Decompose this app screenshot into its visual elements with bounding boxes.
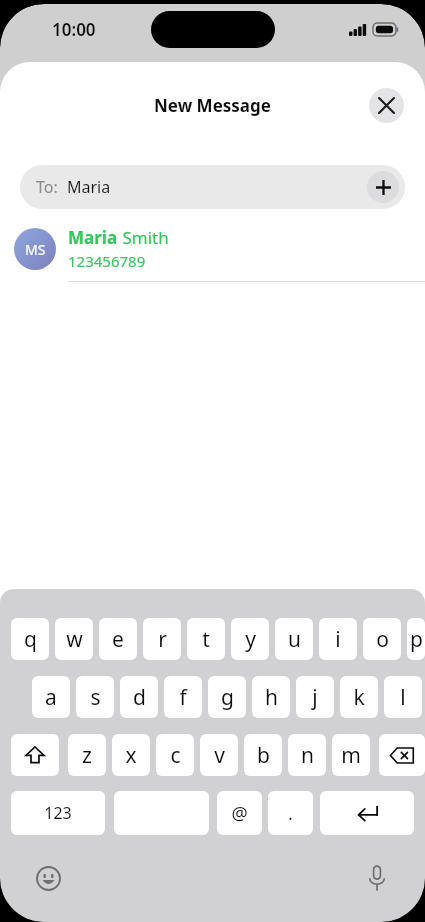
button[interactable]: z — [68, 734, 106, 776]
button[interactable]: . — [268, 791, 313, 835]
staticText: d — [133, 683, 146, 712]
button[interactable]: 123 — [11, 791, 105, 835]
button[interactable]: i — [319, 618, 357, 660]
staticText: y — [245, 625, 256, 654]
staticText: h — [265, 683, 278, 712]
staticText: New Message — [154, 94, 271, 117]
staticText: o — [376, 625, 389, 654]
button[interactable]: a — [32, 676, 70, 718]
button[interactable]: w — [55, 618, 93, 660]
button[interactable]: MS — [0, 226, 425, 282]
staticText: . — [288, 801, 293, 826]
staticText: Maria — [67, 176, 111, 198]
staticText: To: — [36, 176, 58, 198]
staticText: j — [312, 683, 318, 712]
staticText: c — [170, 741, 181, 770]
button[interactable]: @ — [217, 791, 262, 835]
staticText: t — [202, 625, 210, 654]
staticText: u — [288, 625, 301, 654]
button[interactable]: Space — [114, 791, 209, 835]
button[interactable]: g — [208, 676, 246, 718]
staticText: m — [341, 741, 361, 770]
staticText: n — [301, 741, 314, 770]
staticText: b — [257, 741, 270, 770]
staticText: MS — [25, 240, 46, 259]
staticText: l — [400, 683, 406, 712]
button[interactable]: o — [363, 618, 401, 660]
button[interactable]: x — [112, 734, 150, 776]
button[interactable]: Close — [369, 88, 404, 123]
staticText: s — [90, 683, 101, 712]
button[interactable]: Emoji — [34, 864, 62, 892]
staticText: z — [82, 741, 92, 770]
staticText: 123456789 — [68, 251, 146, 271]
staticText: Maria — [68, 226, 118, 249]
staticText: a — [45, 683, 57, 712]
button[interactable]: f — [164, 676, 202, 718]
staticText: x — [125, 741, 137, 770]
button[interactable]: e — [99, 618, 137, 660]
staticText: p — [410, 625, 423, 654]
button[interactable]: s — [76, 676, 114, 718]
staticText: i — [335, 625, 341, 654]
button[interactable]: Shift — [11, 734, 59, 776]
button[interactable]: p — [407, 618, 425, 660]
button[interactable]: To: — [20, 165, 405, 209]
button[interactable]: m — [332, 734, 370, 776]
button[interactable]: l — [384, 676, 422, 718]
button[interactable]: Dictation — [363, 864, 391, 892]
staticText: Smith — [118, 226, 169, 249]
button[interactable]: d — [120, 676, 158, 718]
button[interactable]: q — [11, 618, 49, 660]
button[interactable]: y — [231, 618, 269, 660]
button[interactable]: c — [156, 734, 194, 776]
button[interactable]: u — [275, 618, 313, 660]
button[interactable]: t — [187, 618, 225, 660]
staticText: @ — [231, 801, 248, 826]
button[interactable]: n — [288, 734, 326, 776]
button[interactable]: b — [244, 734, 282, 776]
button[interactable]: j — [296, 676, 334, 718]
staticText: e — [112, 625, 124, 654]
staticText: g — [221, 683, 234, 712]
button[interactable]: Add contact — [367, 171, 399, 203]
button[interactable]: h — [252, 676, 290, 718]
button[interactable]: r — [143, 618, 181, 660]
staticText: 123 — [44, 802, 72, 824]
staticText: k — [353, 683, 365, 712]
staticText: w — [66, 625, 83, 654]
staticText: v — [214, 741, 225, 770]
button[interactable]: v — [200, 734, 238, 776]
button[interactable]: Backspace — [379, 734, 425, 776]
staticText: f — [179, 683, 187, 712]
staticText: q — [24, 625, 37, 654]
button[interactable]: Return — [320, 791, 414, 835]
staticText: 10:00 — [52, 18, 96, 41]
staticText: r — [158, 625, 167, 654]
button[interactable]: k — [340, 676, 378, 718]
